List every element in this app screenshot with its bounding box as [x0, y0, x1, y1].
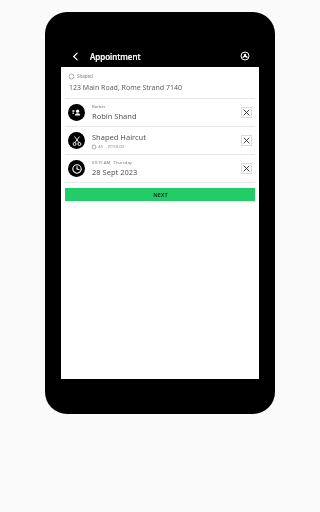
button[interactable]: Remove [241, 135, 252, 146]
button[interactable]: 09:15 AM, Thursday [61, 155, 259, 182]
button[interactable]: Remove [241, 107, 252, 118]
staticText: 09:15 AM, Thursday [92, 160, 132, 166]
staticText: NEXT [153, 191, 168, 198]
button[interactable]: Barber [61, 99, 259, 126]
staticText: Robin Shand [92, 111, 137, 121]
button[interactable]: Profile [238, 49, 252, 63]
staticText: Shaped Haircut [92, 132, 146, 142]
button[interactable]: Back [68, 49, 82, 63]
button[interactable]: Shaped Haircut [61, 127, 259, 154]
button[interactable]: NEXT [65, 188, 255, 201]
button[interactable]: Remove [241, 163, 252, 174]
staticText: 123 Main Road, Rome Strand 7140 [69, 83, 182, 93]
staticText: Shaped [77, 73, 93, 79]
staticText: Barber [92, 104, 106, 110]
staticText: 45 R150.00 [98, 144, 124, 150]
staticText: 28 Sept 2023 [92, 167, 138, 177]
staticText: Appointment [90, 51, 141, 62]
